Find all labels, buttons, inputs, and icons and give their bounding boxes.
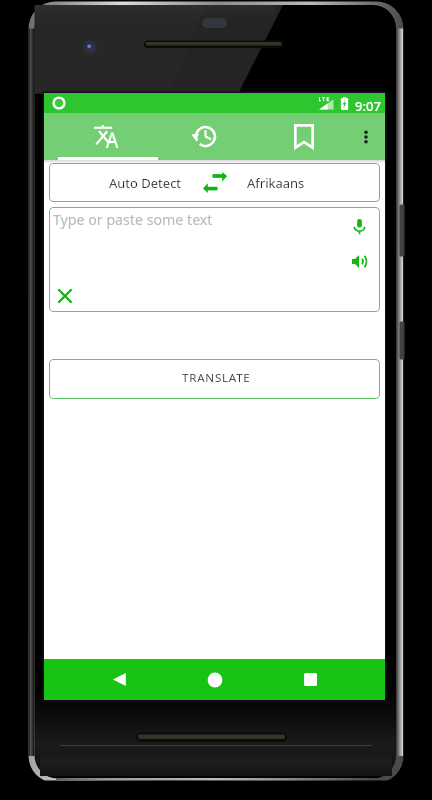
staticText: 9:07 bbox=[355, 97, 381, 115]
staticText: Type or paste some text bbox=[53, 210, 213, 229]
button[interactable]: Home bbox=[187, 659, 243, 700]
button[interactable]: More options bbox=[347, 113, 385, 160]
button[interactable]: Translate bbox=[56, 113, 155, 160]
staticText: TRANSLATE bbox=[182, 370, 251, 386]
staticText: Auto Detect bbox=[109, 174, 182, 192]
button[interactable]: Swap languages bbox=[182, 163, 247, 202]
button[interactable]: Back bbox=[91, 659, 147, 700]
staticText: Afrikaans bbox=[247, 174, 305, 192]
button[interactable]: History bbox=[155, 113, 254, 160]
button[interactable]: Recent apps bbox=[282, 659, 338, 700]
button[interactable]: TRANSLATE bbox=[49, 359, 380, 399]
button[interactable]: Afrikaans bbox=[247, 163, 380, 202]
button[interactable]: Auto Detect bbox=[49, 163, 182, 202]
button[interactable]: Voice input bbox=[344, 211, 375, 242]
button[interactable]: Speak text bbox=[344, 246, 375, 277]
button[interactable]: Bookmarks bbox=[254, 113, 353, 160]
button[interactable]: Clear text bbox=[51, 282, 79, 310]
